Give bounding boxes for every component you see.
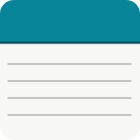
button[interactable]: Notes app bar (0, 0, 140, 43)
button[interactable]: Notes (0, 0, 140, 140)
